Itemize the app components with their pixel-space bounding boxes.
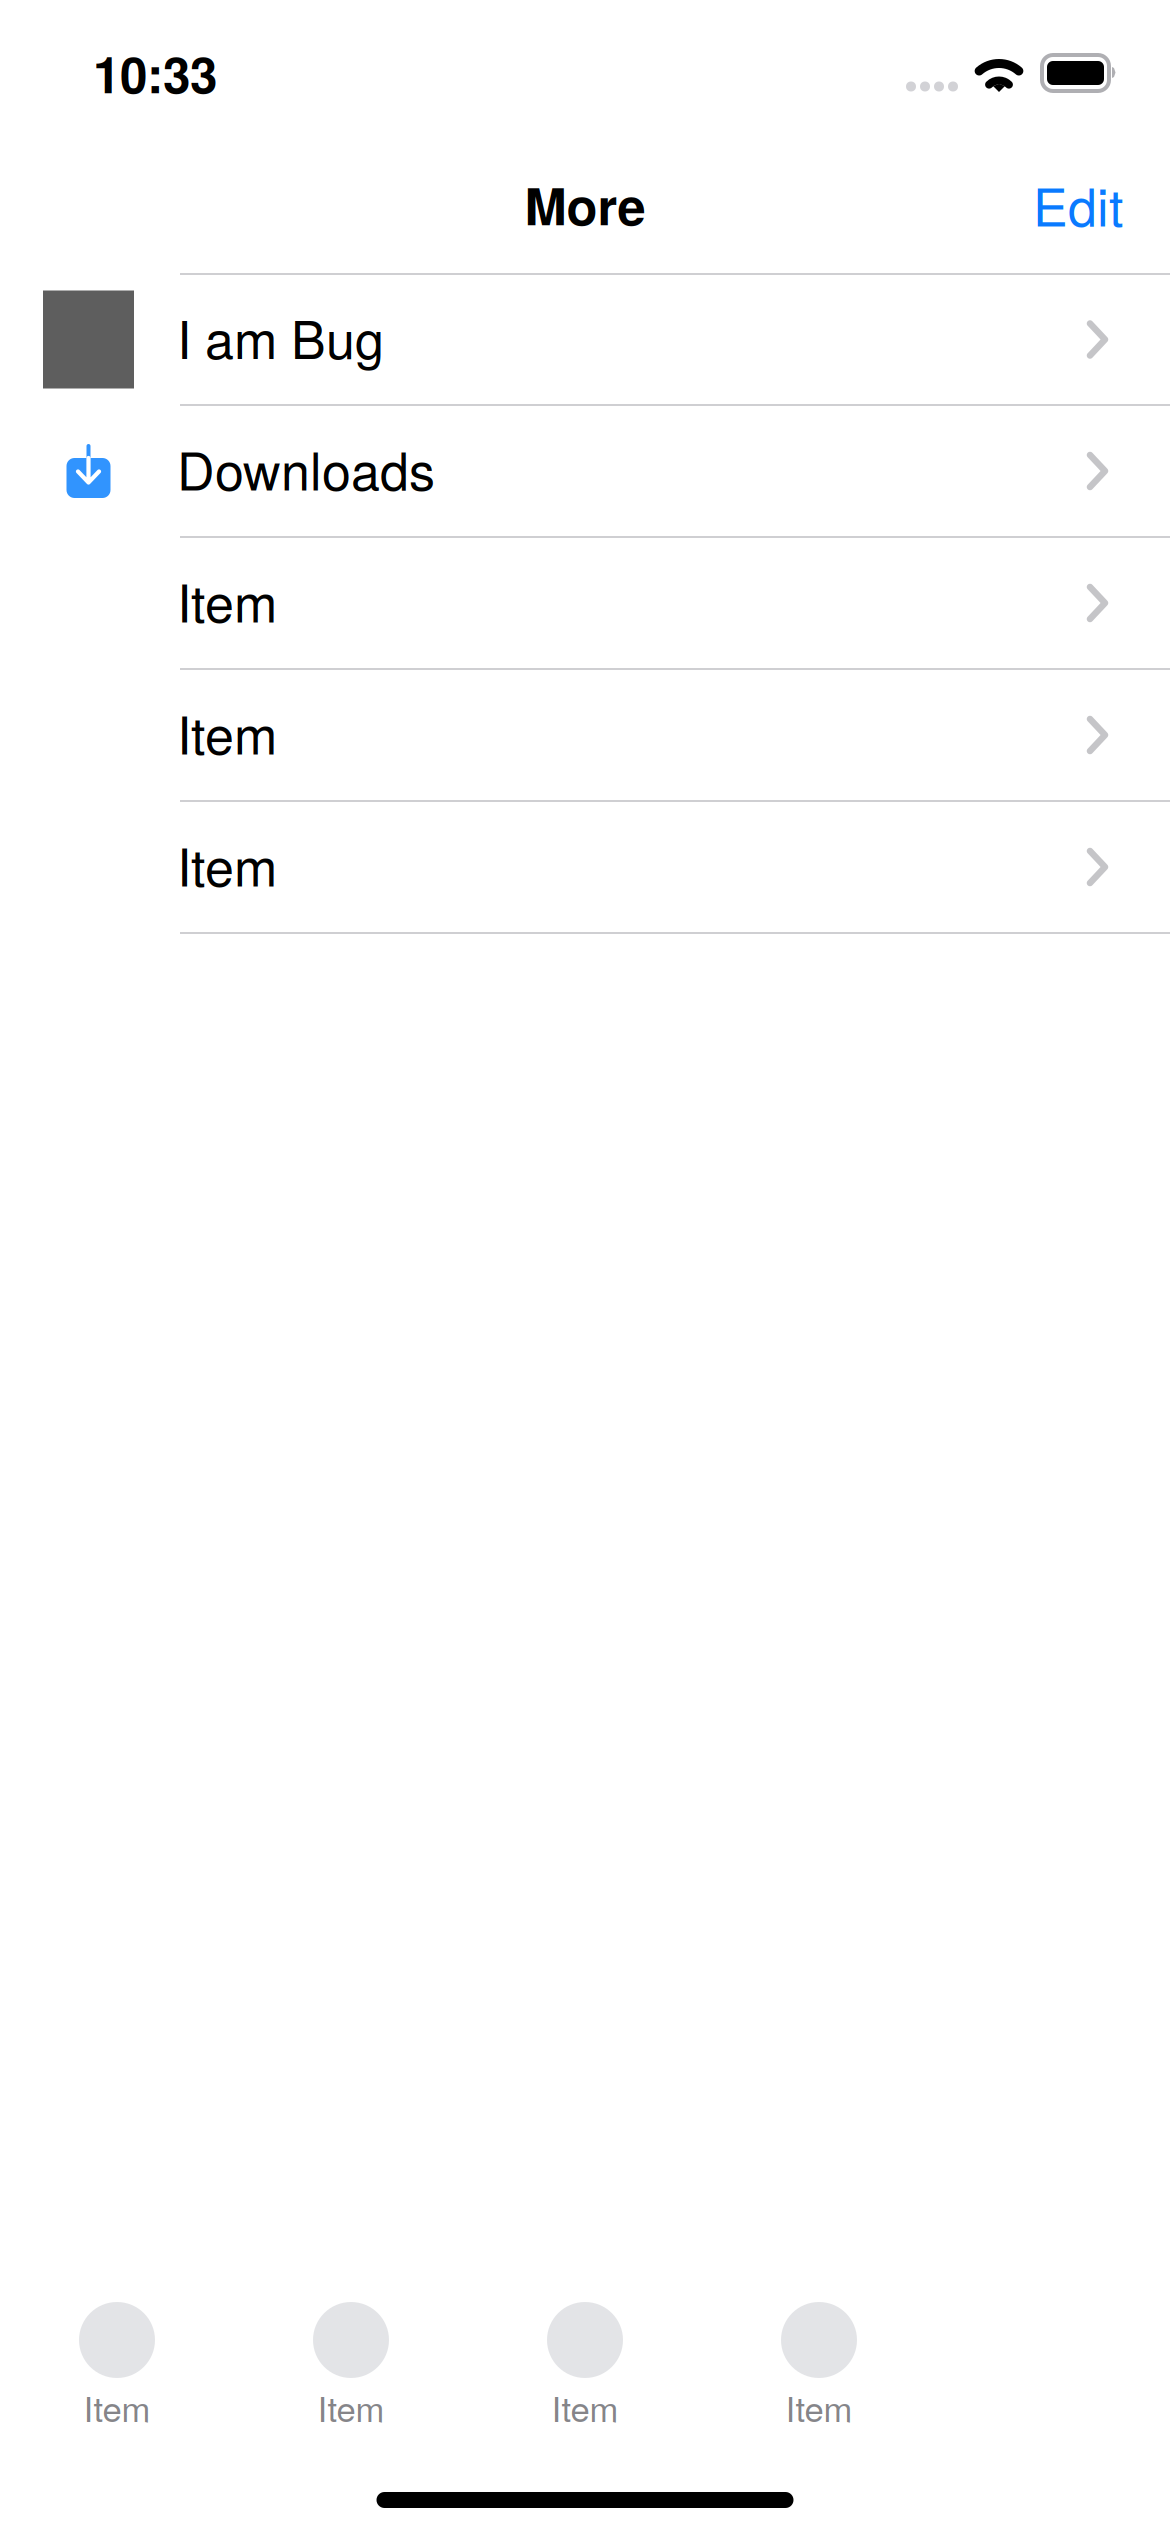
button[interactable]: Edit <box>1011 152 1143 267</box>
staticText: Item <box>83 2382 150 2432</box>
button[interactable]: Item <box>0 538 1170 668</box>
staticText: Downloads <box>177 431 435 505</box>
button[interactable]: Item <box>0 802 1170 932</box>
staticText: Item <box>317 2382 384 2432</box>
staticText: Item <box>551 2382 618 2432</box>
button[interactable]: Item <box>234 2292 468 2426</box>
staticText: Edit <box>1033 167 1123 241</box>
button[interactable]: Item <box>0 670 1170 800</box>
button[interactable]: Downloads <box>0 406 1170 536</box>
button[interactable]: Item <box>702 2292 936 2426</box>
staticText: Item <box>177 563 277 637</box>
staticText: Item <box>177 695 277 769</box>
staticText: I am Bug <box>177 299 384 374</box>
button[interactable]: Item <box>468 2292 702 2426</box>
button[interactable]: I am Bug <box>0 275 1170 404</box>
button[interactable]: Item <box>0 2292 234 2426</box>
staticText: Item <box>785 2382 852 2432</box>
staticText: Item <box>177 827 277 901</box>
staticText: 10:33 <box>93 38 217 108</box>
staticText: More <box>524 168 645 241</box>
